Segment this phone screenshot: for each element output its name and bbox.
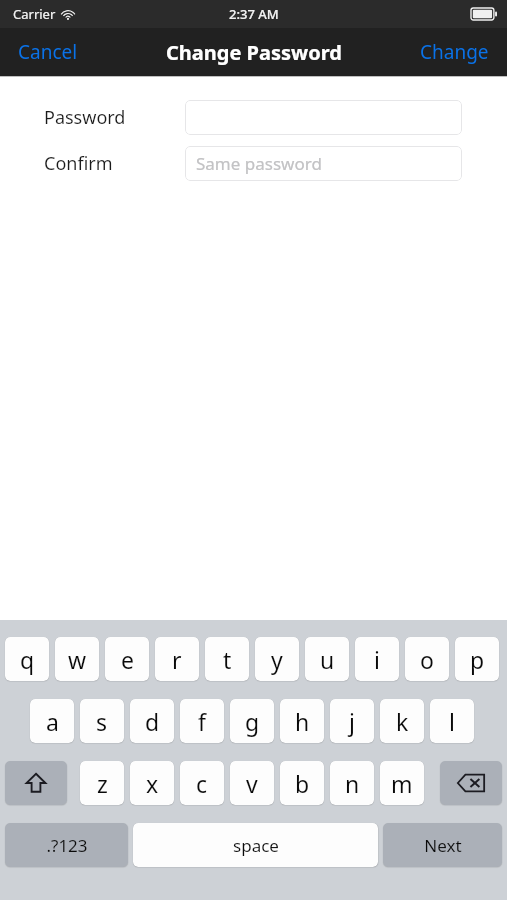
staticText: k bbox=[396, 706, 409, 737]
staticText: r bbox=[172, 644, 182, 675]
button[interactable]: p bbox=[455, 637, 499, 681]
staticText: Carrier bbox=[13, 5, 56, 23]
staticText: q bbox=[20, 644, 35, 675]
staticText: u bbox=[320, 644, 335, 675]
button[interactable]: a bbox=[30, 699, 74, 743]
button[interactable]: v bbox=[230, 761, 274, 805]
button[interactable]: r bbox=[155, 637, 199, 681]
staticText: .?123 bbox=[46, 834, 88, 857]
staticText: g bbox=[245, 706, 260, 737]
button[interactable]: f bbox=[180, 699, 224, 743]
button[interactable]: Cancel bbox=[0, 29, 96, 75]
staticText: Next bbox=[424, 834, 462, 857]
staticText: y bbox=[271, 644, 283, 675]
button[interactable]: u bbox=[305, 637, 349, 681]
button[interactable]: y bbox=[255, 637, 299, 681]
staticText: Change bbox=[420, 39, 489, 65]
button[interactable]: Change bbox=[402, 29, 507, 75]
button[interactable]: x bbox=[130, 761, 174, 805]
button[interactable]: i bbox=[355, 637, 399, 681]
staticText: b bbox=[295, 768, 310, 799]
staticText: Confirm bbox=[44, 151, 113, 176]
button[interactable]: e bbox=[105, 637, 149, 681]
button[interactable]: Shift bbox=[5, 761, 67, 805]
staticText: a bbox=[46, 706, 59, 737]
staticText: Password bbox=[44, 105, 126, 130]
staticText: d bbox=[145, 706, 160, 737]
button[interactable]: s bbox=[80, 699, 124, 743]
staticText: h bbox=[295, 706, 310, 737]
staticText: i bbox=[374, 644, 380, 675]
staticText: f bbox=[198, 706, 206, 737]
button[interactable]: t bbox=[205, 637, 249, 681]
staticText: x bbox=[146, 768, 159, 799]
button[interactable]: Next bbox=[383, 823, 502, 867]
button[interactable]: m bbox=[380, 761, 424, 805]
staticText: n bbox=[345, 768, 360, 799]
staticText: Cancel bbox=[18, 39, 78, 65]
button[interactable]: c bbox=[180, 761, 224, 805]
staticText: e bbox=[121, 644, 134, 675]
staticText: m bbox=[391, 768, 413, 799]
staticText: o bbox=[420, 644, 434, 675]
staticText: j bbox=[349, 706, 355, 737]
button[interactable]: .?123 bbox=[5, 823, 128, 867]
staticText: Change Password bbox=[166, 39, 342, 66]
button[interactable]: g bbox=[230, 699, 274, 743]
staticText: v bbox=[246, 768, 258, 799]
button[interactable]: b bbox=[280, 761, 324, 805]
button[interactable]: o bbox=[405, 637, 449, 681]
button[interactable]: l bbox=[430, 699, 474, 743]
staticText: p bbox=[470, 644, 485, 675]
button[interactable]: k bbox=[380, 699, 424, 743]
staticText: 2:37 AM bbox=[229, 5, 279, 23]
button[interactable] bbox=[185, 100, 462, 135]
staticText: z bbox=[97, 768, 108, 799]
button[interactable]: Backspace bbox=[440, 761, 502, 805]
staticText: c bbox=[196, 768, 208, 799]
button[interactable]: h bbox=[280, 699, 324, 743]
staticText: t bbox=[223, 644, 232, 675]
staticText: space bbox=[233, 834, 279, 857]
button[interactable]: w bbox=[55, 637, 99, 681]
button[interactable]: z bbox=[80, 761, 124, 805]
button[interactable]: n bbox=[330, 761, 374, 805]
button[interactable]: q bbox=[5, 637, 49, 681]
button[interactable]: space bbox=[133, 823, 378, 867]
staticText: l bbox=[449, 706, 455, 737]
staticText: w bbox=[68, 644, 87, 675]
staticText: s bbox=[96, 706, 108, 737]
button[interactable]: j bbox=[330, 699, 374, 743]
button[interactable]: d bbox=[130, 699, 174, 743]
staticText: Same password bbox=[196, 152, 322, 175]
button[interactable]: Same password bbox=[185, 146, 462, 181]
